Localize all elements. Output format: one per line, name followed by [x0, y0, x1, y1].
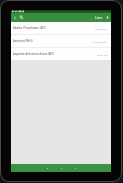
button[interactable]: Ammonia (NH3): [11, 35, 111, 47]
staticText: 40-130 U/L: [95, 27, 108, 30]
staticText: Aspartate Aminotransferase (AST): [13, 52, 54, 56]
button[interactable]: Navigate up: [12, 13, 18, 22]
button[interactable]: Home: [54, 164, 68, 172]
staticText: Alkaline Phosphatase (ALP): [13, 26, 46, 30]
button[interactable]: Aspartate Aminotransferase (AST): [11, 48, 111, 60]
button[interactable]: Alkaline Phosphatase (ALP): [11, 22, 111, 34]
button[interactable]: Back: [40, 164, 54, 172]
button[interactable]: More options: [105, 13, 110, 22]
button[interactable]: Recent apps: [68, 164, 82, 172]
staticText: Ammonia (NH3): [13, 39, 33, 43]
button[interactable]: Search: [18, 13, 25, 22]
staticText: Liver: [95, 16, 103, 20]
staticText: 15-45 mcg/dL: [92, 40, 108, 43]
staticText: 10-40 U/L: [97, 53, 108, 56]
